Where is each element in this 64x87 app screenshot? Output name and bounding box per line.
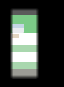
button[interactable] [10,45,39,52]
button[interactable] [12,24,24,33]
button[interactable] [10,62,39,69]
